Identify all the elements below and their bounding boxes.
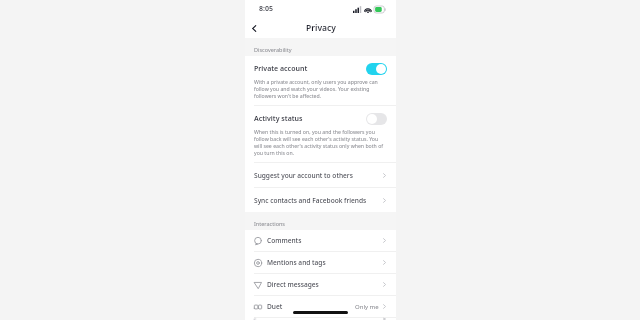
staticText: Duet [267, 302, 355, 311]
staticText: Activity status [254, 114, 366, 124]
staticText: Privacy [306, 22, 336, 34]
button[interactable]: Private account [245, 56, 396, 105]
staticText: Direct messages [267, 280, 382, 289]
staticText: Discoverability [254, 46, 292, 53]
button[interactable]: Back [245, 19, 263, 37]
button[interactable]: Toggle off [366, 113, 387, 125]
button[interactable]: Sync contacts and Facebook friends [245, 188, 396, 212]
staticText: Interactions [254, 220, 286, 227]
staticText: Private account [254, 64, 366, 74]
staticText: Suggest your account to others [254, 171, 382, 180]
button[interactable]: Duet [245, 296, 396, 317]
button[interactable]: Suggest your account to others [245, 163, 396, 187]
button[interactable]: Direct messages [245, 274, 396, 295]
staticText: Only me [355, 303, 379, 311]
staticText: 8:05 [259, 4, 273, 14]
staticText: Mentions and tags [267, 258, 382, 267]
button[interactable]: Mentions and tags [245, 252, 396, 273]
staticText: With a private account, only users you a… [254, 78, 387, 99]
staticText: When this is turned on, you and the foll… [254, 128, 387, 156]
button[interactable]: Comments [245, 230, 396, 251]
staticText: Comments [267, 236, 382, 245]
button[interactable]: Toggle on [366, 63, 387, 75]
button[interactable]: Stitch [245, 318, 396, 320]
button[interactable]: Activity status [245, 106, 396, 162]
staticText: Sync contacts and Facebook friends [254, 196, 382, 205]
